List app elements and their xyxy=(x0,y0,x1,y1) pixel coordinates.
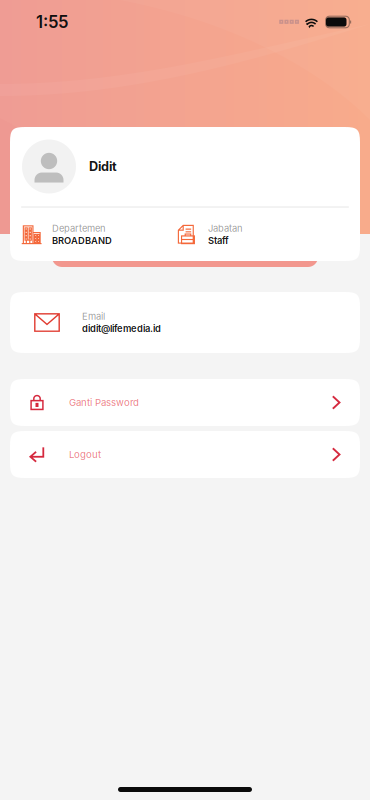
staticText: Email xyxy=(82,311,105,322)
staticText: BROADBAND xyxy=(52,235,112,246)
staticText: Jabatan xyxy=(208,223,243,234)
staticText: Logout xyxy=(69,449,101,460)
staticText: Didit xyxy=(89,159,117,174)
staticText: Departemen xyxy=(52,223,106,234)
button[interactable]: Ganti Password xyxy=(10,379,360,426)
button[interactable]: Logout xyxy=(10,431,360,478)
staticText: didit@lifemedia.id xyxy=(82,323,161,334)
staticText: Ganti Password xyxy=(69,397,139,408)
staticText: 1:55 xyxy=(36,12,68,32)
staticText: Staff xyxy=(208,235,229,246)
